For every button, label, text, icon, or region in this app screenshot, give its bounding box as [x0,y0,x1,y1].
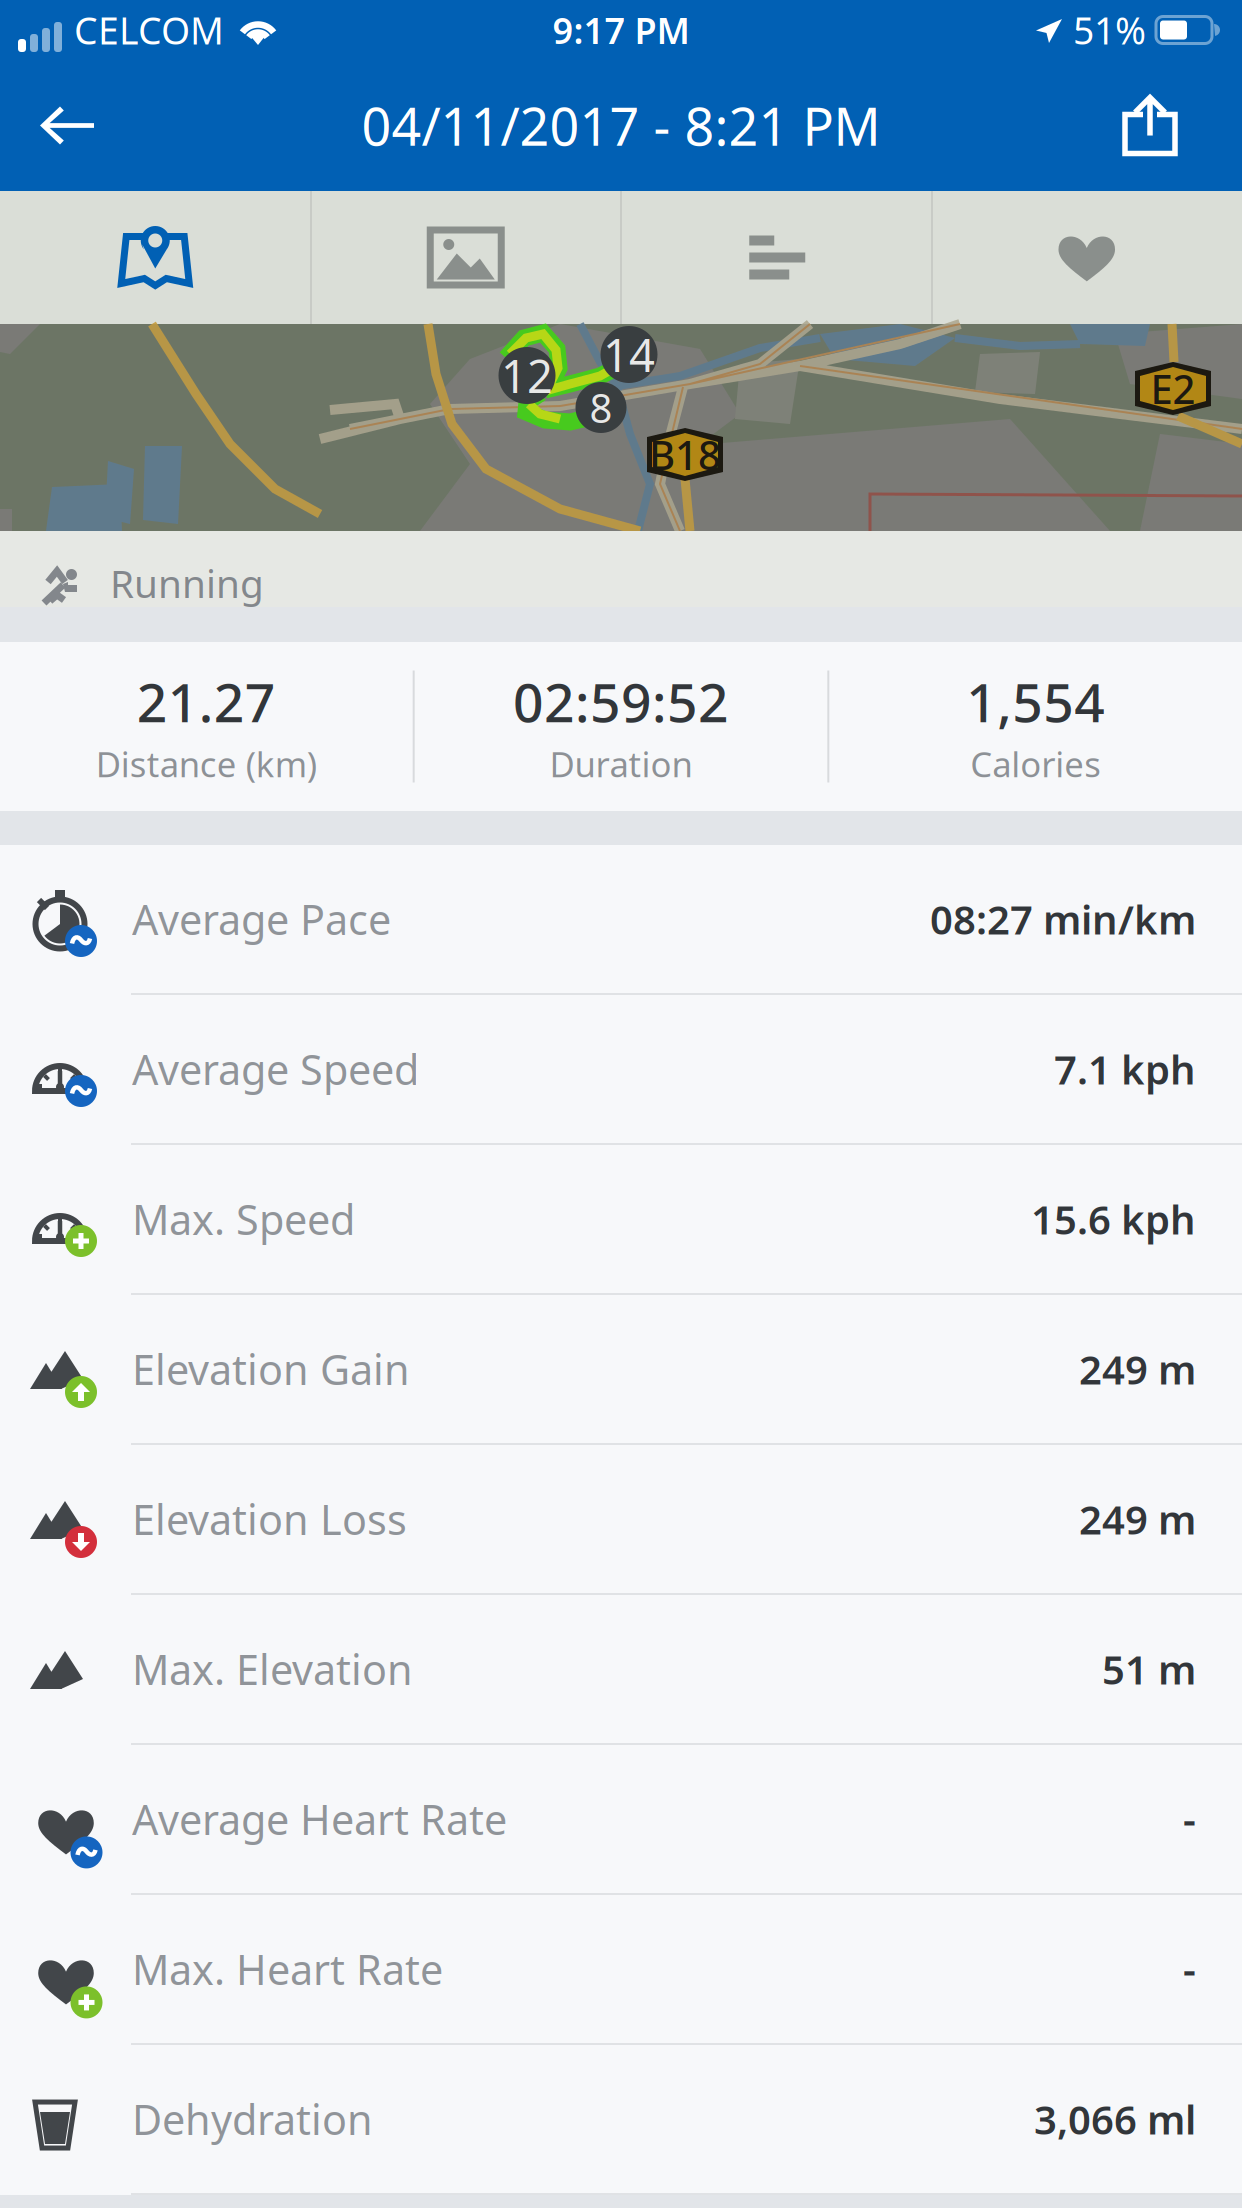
staticText: - [1183,1792,1196,1845]
button[interactable]: Back [8,60,128,190]
button[interactable]: Elevation Loss [0,1445,1242,1595]
staticText: E2 [1150,362,1195,415]
staticText: 7.1 kph [1054,1042,1196,1095]
staticText: 08:27 min/km [930,892,1196,945]
staticText: Calories [970,741,1101,787]
button[interactable]: Max. Speed [0,1145,1242,1295]
button[interactable]: Average Speed [0,995,1242,1145]
staticText: 3,066 ml [1034,2092,1196,2145]
button[interactable]: Map [0,191,310,324]
staticText: 14 [603,324,655,385]
staticText: - [1183,1942,1196,1995]
staticText: Average Heart Rate [132,1792,507,1846]
staticText: 02:59:52 [513,666,729,737]
staticText: Dehydration [132,2092,373,2146]
button[interactable]: Share [1090,60,1210,190]
staticText: Elevation Loss [132,1492,407,1546]
staticText: Max. Heart Rate [132,1942,443,1996]
staticText: Elevation Gain [132,1342,410,1396]
staticText: 04/11/2017 - 8:21 PM [361,91,880,160]
button[interactable]: Average Pace [0,845,1242,995]
staticText: Average Pace [132,892,391,946]
staticText: 51 m [1102,1642,1196,1695]
staticText: CELCOM [74,5,224,55]
staticText: B18 [649,428,721,481]
staticText: Running [110,557,264,609]
staticText: 8 [589,381,612,434]
staticText: 51% [1073,5,1146,55]
staticText: 12 [501,345,553,406]
staticText: 249 m [1079,1492,1196,1545]
button[interactable]: Elevation Gain [0,1295,1242,1445]
button[interactable]: Photos [310,191,621,324]
staticText: 21.27 [137,666,276,737]
staticText: 9:17 PM [552,6,689,54]
button[interactable]: Average Heart Rate [0,1745,1242,1895]
staticText: Average Speed [132,1042,419,1096]
staticText: Max. Speed [132,1192,355,1246]
button[interactable]: Max. Elevation [0,1595,1242,1745]
staticText: Max. Elevation [132,1642,413,1696]
button[interactable]: Max. Heart Rate [0,1895,1242,2045]
staticText: 249 m [1079,1342,1196,1395]
staticText: Distance (km) [96,741,317,787]
button[interactable]: Heart rate [931,191,1242,324]
staticText: 1,554 [966,666,1105,737]
button[interactable]: Dehydration [0,2045,1242,2195]
staticText: 15.6 kph [1031,1192,1196,1245]
staticText: Duration [549,741,692,787]
button[interactable]: Graphs [621,191,931,324]
